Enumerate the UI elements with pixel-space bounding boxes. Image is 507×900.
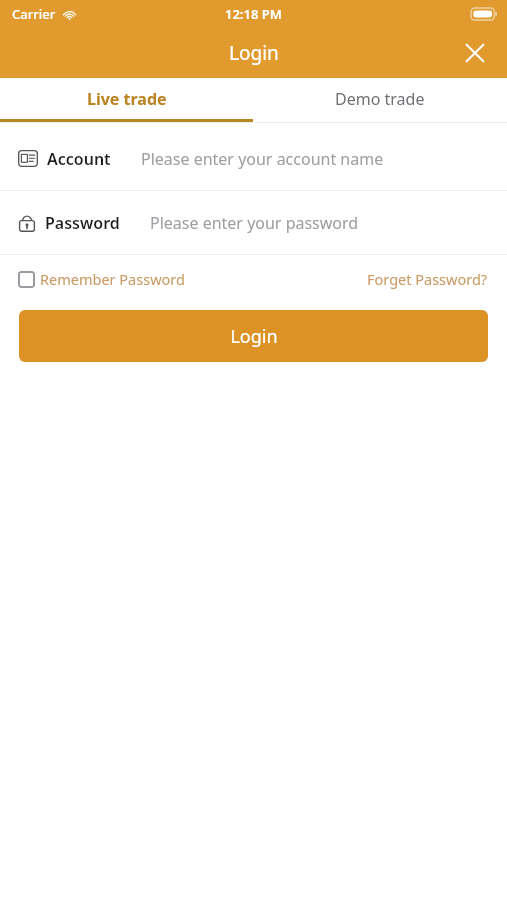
button[interactable]: Remember Password [18, 269, 185, 289]
button[interactable]: Forget Password? [367, 269, 488, 289]
staticText: 12:18 PM [225, 5, 282, 23]
staticText: Account [47, 148, 111, 170]
staticText: Please enter your account name [141, 148, 384, 170]
staticText: Forget Password? [367, 269, 488, 289]
staticText: Please enter your password [150, 212, 359, 234]
staticText: Login [229, 40, 279, 66]
staticText: Remember Password [40, 269, 185, 289]
staticText: Carrier [12, 5, 56, 23]
staticText: Demo trade [335, 88, 425, 110]
button[interactable]: Close [453, 31, 497, 75]
button[interactable]: Live trade [0, 78, 253, 119]
button[interactable]: Account [0, 127, 507, 190]
button[interactable]: Demo trade [253, 78, 507, 119]
button[interactable]: Login [19, 310, 488, 362]
staticText: Live trade [87, 88, 167, 110]
staticText: Password [45, 212, 120, 234]
button[interactable]: Password [0, 191, 507, 254]
staticText: Login [230, 324, 278, 349]
